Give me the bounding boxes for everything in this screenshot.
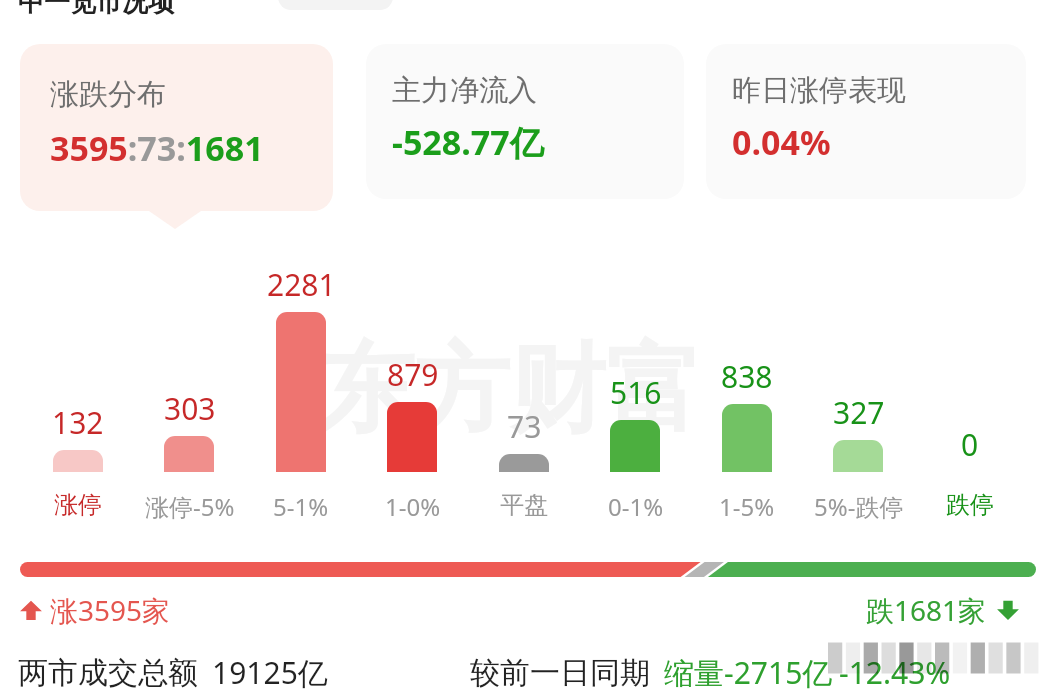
- staticText: 132: [52, 402, 104, 443]
- button[interactable]: 0-1%: [610, 420, 660, 472]
- staticText: 5%-跌停: [814, 490, 904, 523]
- button[interactable]: 5%-跌停: [833, 440, 883, 472]
- button[interactable]: 昨日涨停表现: [706, 44, 1026, 199]
- staticText: 0.04%: [732, 119, 831, 165]
- button[interactable]: 平盘: [499, 454, 549, 472]
- button[interactable]: 跌1681家: [866, 591, 1021, 629]
- staticText: 涨跌分布: [50, 76, 166, 113]
- staticText: 879: [387, 354, 439, 395]
- other: 上涨: [18, 597, 44, 623]
- button[interactable]: 涨跌分布: [20, 44, 333, 211]
- staticText: 涨停-5%: [145, 490, 235, 523]
- button[interactable]: 两市成交总额: [18, 652, 328, 693]
- button[interactable]: 主力净流入: [366, 44, 684, 199]
- staticText: 缩量-2715亿: [664, 652, 833, 693]
- staticText: 327: [833, 392, 885, 433]
- staticText: 0: [961, 424, 979, 465]
- button[interactable]: 中一览市况项: [18, 0, 174, 19]
- button[interactable]: 涨停: [53, 450, 103, 472]
- button[interactable]: 上涨: [18, 591, 171, 629]
- staticText: 昨日涨停表现: [732, 72, 906, 109]
- staticText: 涨3595家: [50, 591, 171, 629]
- staticText: 73: [507, 406, 542, 447]
- staticText: -528.77亿: [392, 119, 544, 165]
- button[interactable]: 1-5%: [722, 404, 772, 472]
- staticText: 1-5%: [719, 490, 775, 523]
- staticText: 5-1%: [273, 490, 329, 523]
- staticText: 跌停: [946, 490, 994, 520]
- staticText: 1-0%: [385, 490, 441, 523]
- button[interactable]: 较前一日同期: [470, 652, 951, 693]
- button[interactable]: 1-0%: [387, 402, 437, 472]
- other: 下跌: [995, 597, 1021, 623]
- staticText: 3595:73:1681: [50, 125, 264, 171]
- staticText: 516: [610, 372, 662, 413]
- staticText: 2281: [267, 264, 336, 305]
- staticText: 东方财富: [318, 330, 702, 451]
- staticText: 0-1%: [608, 490, 664, 523]
- staticText: 跌1681家: [866, 591, 987, 629]
- staticText: 中一览市况项: [18, 0, 174, 19]
- staticText: -12.43%: [839, 652, 951, 693]
- button[interactable]: 涨停-5%: [164, 436, 214, 472]
- staticText: 303: [164, 388, 216, 429]
- staticText: 较前一日同期: [470, 654, 650, 692]
- staticText: 主力净流入: [392, 72, 537, 109]
- staticText: 涨停: [54, 490, 102, 520]
- staticText: 838: [721, 356, 773, 397]
- button[interactable]: 5-1%: [276, 312, 326, 472]
- staticText: 平盘: [500, 490, 548, 520]
- staticText: 两市成交总额: [18, 654, 198, 692]
- button[interactable]: 涨跌家数比例: [20, 562, 1036, 577]
- staticText: 19125亿: [212, 652, 328, 693]
